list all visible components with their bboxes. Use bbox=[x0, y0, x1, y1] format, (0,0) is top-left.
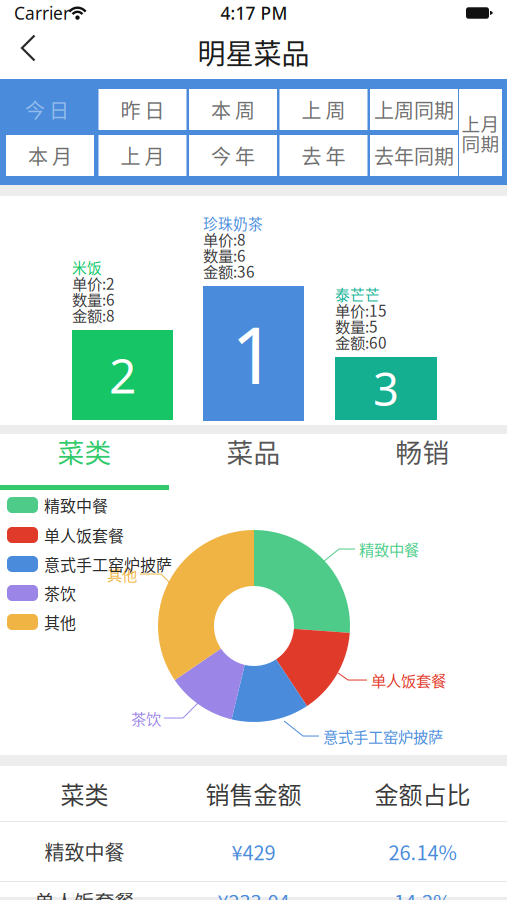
staticText: 金额:60 bbox=[335, 331, 387, 353]
staticText: 精致中餐 bbox=[44, 493, 108, 517]
button[interactable]: 菜类 bbox=[0, 434, 169, 468]
staticText: 单价:2 bbox=[72, 272, 115, 294]
button[interactable]: 上月 bbox=[459, 89, 502, 176]
staticText: 14.2% bbox=[394, 886, 451, 900]
button[interactable]: 本 周 bbox=[189, 89, 277, 130]
staticText: 金额:8 bbox=[72, 304, 115, 326]
staticText: 精致中餐 bbox=[44, 837, 124, 866]
staticText: 上周同期 bbox=[374, 95, 454, 124]
staticText: 意式手工窑炉披萨 bbox=[323, 725, 443, 747]
staticText: 金额:36 bbox=[203, 260, 255, 282]
staticText: 精致中餐 bbox=[359, 538, 419, 560]
staticText: 茶饮 bbox=[44, 581, 76, 605]
staticText: 昨 日 bbox=[120, 95, 164, 124]
staticText: 2 bbox=[109, 343, 136, 407]
button[interactable]: 畅销 bbox=[338, 434, 507, 468]
staticText: 销售金额 bbox=[205, 776, 301, 811]
staticText: 金额占比 bbox=[374, 776, 470, 811]
staticText: 菜类 bbox=[60, 776, 108, 811]
staticText: 去年同期 bbox=[374, 141, 454, 170]
staticText: 上 月 bbox=[120, 141, 164, 170]
staticText: 单人饭套餐 bbox=[34, 886, 134, 900]
staticText: 同期 bbox=[461, 129, 499, 156]
button[interactable]: 去 年 bbox=[279, 135, 367, 176]
staticText: 其他 bbox=[44, 610, 76, 634]
button[interactable]: 今 年 bbox=[189, 135, 277, 176]
staticText: 菜品 bbox=[226, 432, 280, 470]
staticText: ¥429 bbox=[231, 837, 275, 866]
staticText: 上月 bbox=[461, 109, 499, 136]
staticText: 明星菜品 bbox=[197, 32, 309, 72]
staticText: 本 月 bbox=[28, 141, 72, 170]
button[interactable]: 菜品 bbox=[169, 434, 338, 468]
button[interactable]: 去年同期 bbox=[370, 135, 458, 176]
staticText: 本 周 bbox=[211, 95, 255, 124]
staticText: 单人饭套餐 bbox=[371, 669, 446, 691]
staticText: Carrier bbox=[14, 1, 70, 24]
staticText: 茶饮 bbox=[131, 707, 161, 729]
staticText: 3 bbox=[373, 358, 399, 419]
staticText: 26.14% bbox=[388, 837, 456, 866]
staticText: 上 周 bbox=[301, 95, 345, 124]
staticText: 珍珠奶茶 bbox=[203, 212, 263, 234]
staticText: 数量:6 bbox=[72, 288, 115, 310]
staticText: 单价:15 bbox=[335, 299, 387, 321]
staticText: ¥233.04 bbox=[217, 886, 289, 900]
staticText: 数量:5 bbox=[335, 315, 378, 337]
button[interactable]: 昨 日 bbox=[98, 89, 186, 130]
button[interactable]: 本 月 bbox=[6, 135, 94, 176]
staticText: 泰芒芒 bbox=[335, 283, 380, 305]
staticText: 今 年 bbox=[211, 141, 255, 170]
staticText: 单价:8 bbox=[203, 228, 246, 250]
staticText: 菜类 bbox=[57, 432, 111, 470]
staticText: 去 年 bbox=[301, 141, 345, 170]
button[interactable]: 今 日 bbox=[0, 89, 94, 130]
staticText: 意式手工窑炉披萨 bbox=[44, 552, 172, 576]
staticText: 畅销 bbox=[395, 432, 449, 470]
button[interactable]: 上 周 bbox=[279, 89, 367, 130]
staticText: 今 日 bbox=[25, 95, 69, 124]
button[interactable]: 上 月 bbox=[98, 135, 186, 176]
staticText: 1 bbox=[231, 301, 276, 406]
staticText: 其他 bbox=[107, 563, 137, 585]
button[interactable]: Back bbox=[4, 26, 52, 70]
staticText: 4:17 PM bbox=[220, 1, 287, 24]
staticText: 米饭 bbox=[72, 256, 102, 278]
button[interactable]: 上周同期 bbox=[370, 89, 458, 130]
staticText: 数量:6 bbox=[203, 244, 246, 266]
staticText: 单人饭套餐 bbox=[44, 523, 124, 547]
